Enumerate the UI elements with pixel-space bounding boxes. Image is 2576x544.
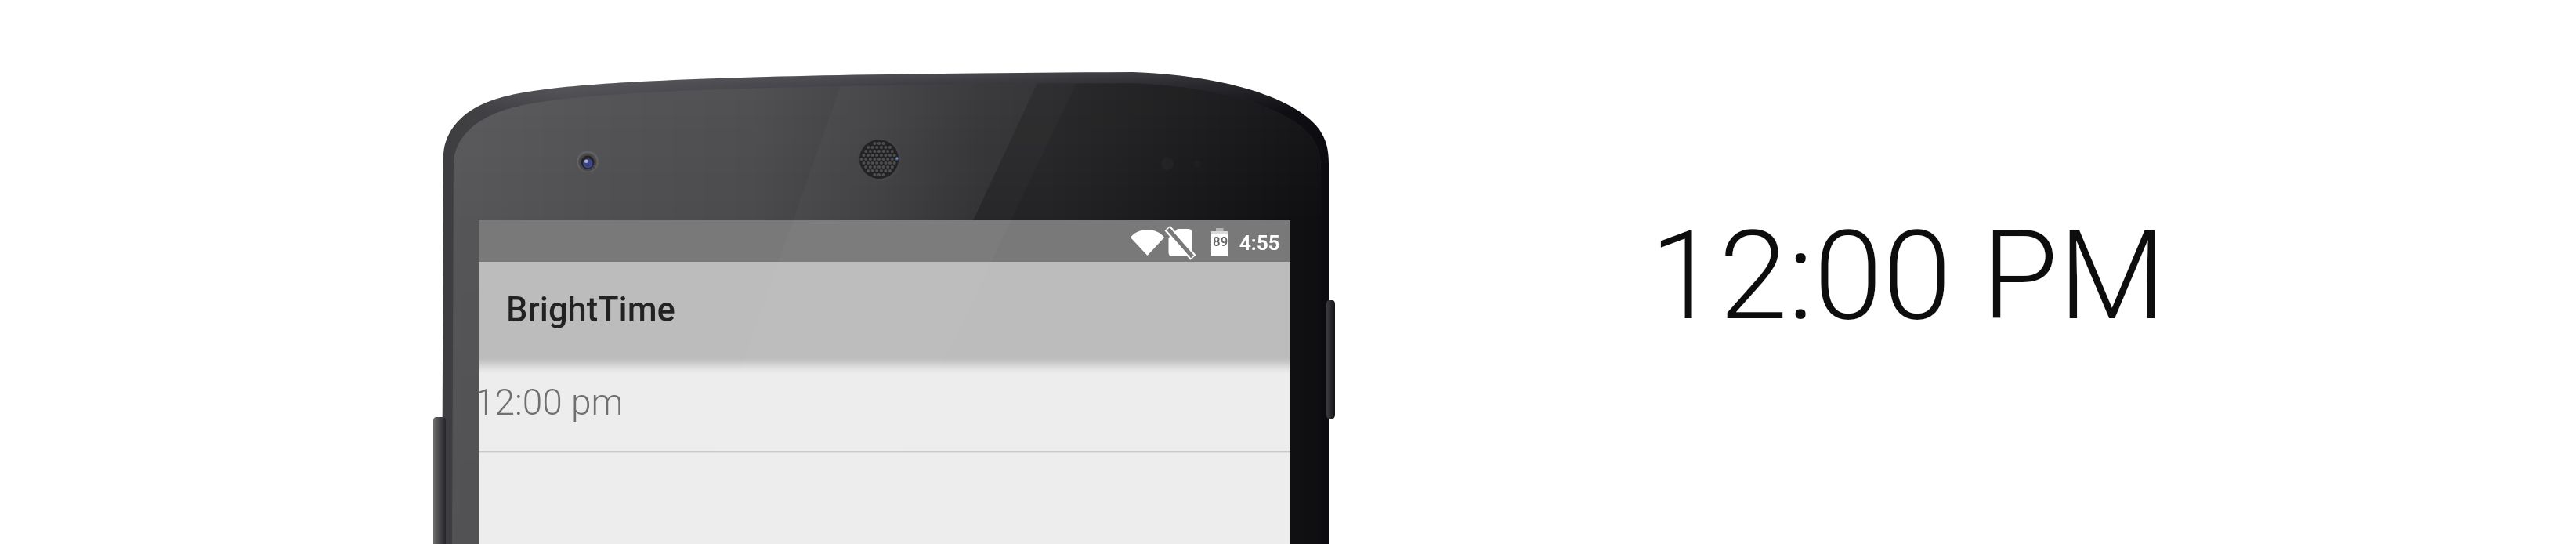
staticText: BrightTime xyxy=(506,290,675,330)
button[interactable] xyxy=(479,451,1290,544)
staticText: 4:55 xyxy=(1239,231,1280,255)
staticText: 12:00 pm xyxy=(475,381,624,423)
button[interactable]: 12:00 pm xyxy=(479,358,1290,451)
staticText: 89 xyxy=(1213,234,1228,249)
button[interactable]: BrightTime xyxy=(479,262,1290,358)
staticText: 12:00 PM xyxy=(1650,203,2166,349)
